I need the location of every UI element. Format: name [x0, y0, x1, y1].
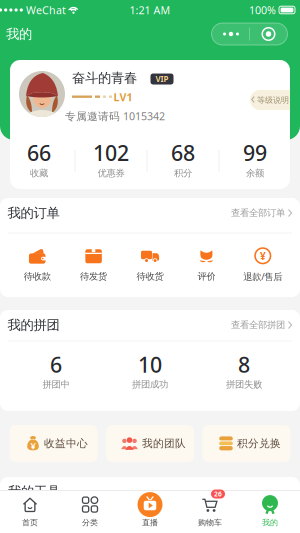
- staticText: 我的团队: [142, 437, 186, 450]
- staticText: 10: [138, 350, 162, 379]
- staticText: WeChat: [26, 3, 66, 17]
- staticText: 我的工具: [8, 483, 60, 500]
- button[interactable]: 6: [9, 355, 103, 395]
- staticText: 等级说明: [257, 95, 289, 105]
- button[interactable]: 积分兑换: [202, 425, 290, 462]
- staticText: 8: [238, 350, 250, 379]
- staticText: 1:21 AM: [129, 3, 170, 17]
- staticText: 我的订单: [7, 205, 59, 221]
- staticText: 专属邀请码 1015342: [65, 109, 165, 123]
- button[interactable]: 查看全部拼团: [231, 319, 292, 331]
- button[interactable]: 等级说明: [250, 90, 290, 110]
- staticText: 积分兑换: [237, 437, 281, 450]
- button[interactable]: 查看全部订单: [231, 207, 292, 219]
- staticText: 优惠券: [97, 167, 124, 179]
- staticText: ¥: [260, 249, 266, 263]
- staticText: 我的: [262, 518, 278, 527]
- button[interactable]: 我的: [240, 490, 300, 532]
- staticText: 待发货: [80, 271, 107, 282]
- staticText: 102: [93, 138, 129, 167]
- button[interactable]: 66: [9, 143, 69, 181]
- staticText: 购物车: [198, 518, 222, 527]
- staticText: 积分: [174, 167, 192, 179]
- staticText: 99: [243, 138, 267, 167]
- staticText: 100%: [249, 3, 276, 17]
- staticText: 查看全部拼团: [231, 319, 285, 331]
- staticText: 评价: [197, 271, 215, 282]
- staticText: 奋斗的青春: [72, 70, 137, 86]
- button[interactable]: 待发货: [65, 244, 122, 286]
- staticText: 6: [50, 350, 62, 379]
- staticText: 68: [171, 138, 195, 167]
- staticText: 待收货: [136, 271, 163, 282]
- button[interactable]: 直播: [120, 490, 180, 532]
- staticText: VIP: [155, 74, 168, 84]
- button[interactable]: ¥: [235, 244, 291, 286]
- staticText: LV1: [113, 90, 132, 104]
- button[interactable]: 8: [197, 355, 291, 395]
- staticText: 我的拼团: [7, 317, 59, 333]
- staticText: 收藏: [30, 167, 48, 179]
- staticText: 拼团成功: [132, 379, 168, 390]
- button[interactable]: 99: [225, 143, 285, 181]
- staticText: ¥: [30, 439, 35, 452]
- staticText: 待收款: [24, 271, 51, 282]
- staticText: 退款/售后: [243, 270, 282, 283]
- staticText: 我的: [6, 26, 32, 42]
- staticText: 首页: [22, 518, 38, 527]
- button[interactable]: 10: [103, 355, 197, 395]
- button[interactable]: 待收货: [122, 244, 178, 286]
- staticText: 拼团失败: [226, 379, 262, 390]
- staticText: 26: [214, 490, 222, 498]
- staticText: 66: [27, 138, 51, 167]
- button[interactable]: More · Close: [211, 23, 287, 45]
- button[interactable]: 购物车: [180, 490, 240, 532]
- button[interactable]: 分类: [60, 490, 120, 532]
- button[interactable]: 68: [153, 143, 213, 181]
- button[interactable]: 评价: [178, 244, 235, 286]
- staticText: 分类: [82, 518, 98, 527]
- button[interactable]: 待收款: [9, 244, 65, 286]
- staticText: 直播: [142, 518, 158, 527]
- staticText: 拼团中: [42, 379, 69, 390]
- staticText: 余额: [246, 167, 264, 179]
- staticText: 收益中心: [44, 437, 88, 450]
- button[interactable]: 102: [81, 143, 141, 181]
- staticText: 查看全部订单: [231, 207, 285, 219]
- button[interactable]: 我的团队: [106, 425, 194, 462]
- button[interactable]: ¥: [9, 425, 97, 462]
- button[interactable]: 首页: [0, 490, 60, 532]
